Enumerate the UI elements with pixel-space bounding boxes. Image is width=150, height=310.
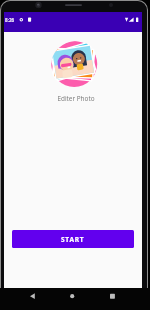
button[interactable]: Editer Photo [51, 41, 101, 91]
staticText: START [61, 235, 85, 244]
button[interactable]: Home [50, 288, 100, 310]
staticText: 8:26 [5, 17, 15, 23]
staticText: Editer Photo [57, 94, 95, 103]
button[interactable]: START [12, 230, 134, 248]
button[interactable]: Back [0, 288, 50, 310]
button[interactable]: Recents [100, 288, 150, 310]
